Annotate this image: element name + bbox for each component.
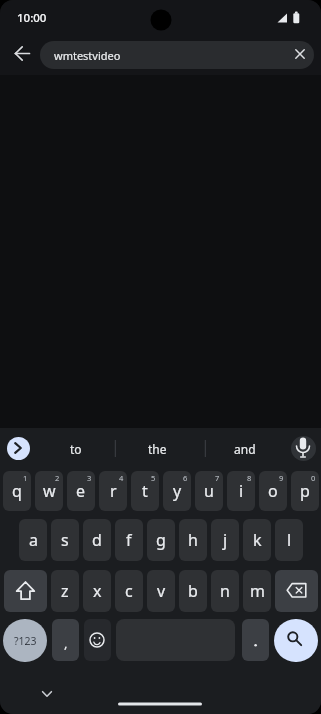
button[interactable]: k: [243, 519, 271, 561]
staticText: q: [12, 480, 22, 502]
button[interactable]: [8, 40, 38, 70]
staticText: 1: [23, 473, 28, 483]
button[interactable]: ,: [52, 619, 79, 661]
button[interactable]: [291, 436, 316, 461]
staticText: w: [43, 480, 56, 502]
button[interactable]: y: [163, 471, 191, 511]
button[interactable]: p: [291, 471, 319, 511]
button[interactable]: w: [35, 471, 63, 511]
staticText: k: [253, 529, 262, 551]
button[interactable]: [275, 570, 318, 612]
button[interactable]: c: [115, 570, 143, 612]
button[interactable]: the: [120, 432, 195, 465]
button[interactable]: h: [179, 519, 207, 561]
staticText: 6: [183, 473, 188, 483]
staticText: 0: [311, 473, 316, 483]
button[interactable]: [84, 619, 111, 661]
button[interactable]: o: [259, 471, 287, 511]
button[interactable]: [274, 619, 318, 662]
button[interactable]: [242, 619, 269, 661]
staticText: y: [173, 480, 182, 502]
staticText: ?123: [14, 634, 37, 648]
button[interactable]: m: [243, 570, 271, 612]
button[interactable]: j: [211, 519, 239, 561]
staticText: j: [223, 529, 228, 551]
staticText: ,: [64, 634, 68, 652]
staticText: 10:00: [17, 10, 47, 26]
staticText: d: [92, 529, 102, 551]
staticText: 5: [151, 473, 156, 483]
staticText: g: [156, 529, 166, 551]
staticText: to: [70, 441, 82, 457]
staticText: 9: [279, 473, 284, 483]
staticText: r: [110, 480, 117, 502]
staticText: 2: [55, 473, 60, 483]
button[interactable]: g: [147, 519, 175, 561]
button[interactable]: [118, 700, 202, 710]
button[interactable]: z: [51, 570, 79, 612]
button[interactable]: a: [19, 519, 47, 561]
staticText: f: [126, 529, 132, 551]
button[interactable]: b: [179, 570, 207, 612]
button[interactable]: i: [227, 471, 255, 511]
button[interactable]: t: [131, 471, 159, 511]
staticText: l: [287, 529, 292, 551]
staticText: e: [76, 480, 86, 502]
staticText: 3: [87, 473, 92, 483]
button[interactable]: f: [115, 519, 143, 561]
staticText: 8: [247, 473, 252, 483]
button[interactable]: e: [67, 471, 95, 511]
button[interactable]: [7, 437, 30, 460]
staticText: a: [29, 529, 38, 551]
button[interactable]: and: [210, 432, 279, 465]
button[interactable]: v: [147, 570, 175, 612]
staticText: u: [204, 480, 214, 502]
staticText: m: [250, 580, 265, 602]
staticText: z: [61, 580, 69, 602]
button[interactable]: ?123: [3, 619, 47, 662]
staticText: wmtestvideo: [54, 48, 121, 63]
button[interactable]: q: [3, 471, 31, 511]
button[interactable]: u: [195, 471, 223, 511]
staticText: c: [125, 580, 133, 602]
staticText: t: [142, 480, 148, 502]
button[interactable]: x: [83, 570, 111, 612]
button[interactable]: l: [275, 519, 303, 561]
button[interactable]: wmtestvideo: [40, 41, 314, 69]
staticText: v: [157, 580, 166, 602]
button[interactable]: [4, 570, 47, 612]
staticText: b: [188, 580, 198, 602]
staticText: i: [239, 480, 244, 502]
staticText: 4: [119, 473, 124, 483]
button[interactable]: d: [83, 519, 111, 561]
staticText: the: [148, 441, 167, 457]
staticText: h: [188, 529, 198, 551]
staticText: n: [220, 580, 230, 602]
staticText: x: [93, 580, 102, 602]
button[interactable]: to: [40, 432, 111, 465]
button[interactable]: s: [51, 519, 79, 561]
staticText: and: [234, 441, 256, 457]
staticText: o: [268, 480, 278, 502]
button[interactable]: n: [211, 570, 239, 612]
button[interactable]: r: [99, 471, 127, 511]
staticText: 7: [215, 473, 220, 483]
staticText: p: [300, 480, 310, 502]
staticText: s: [61, 529, 69, 551]
